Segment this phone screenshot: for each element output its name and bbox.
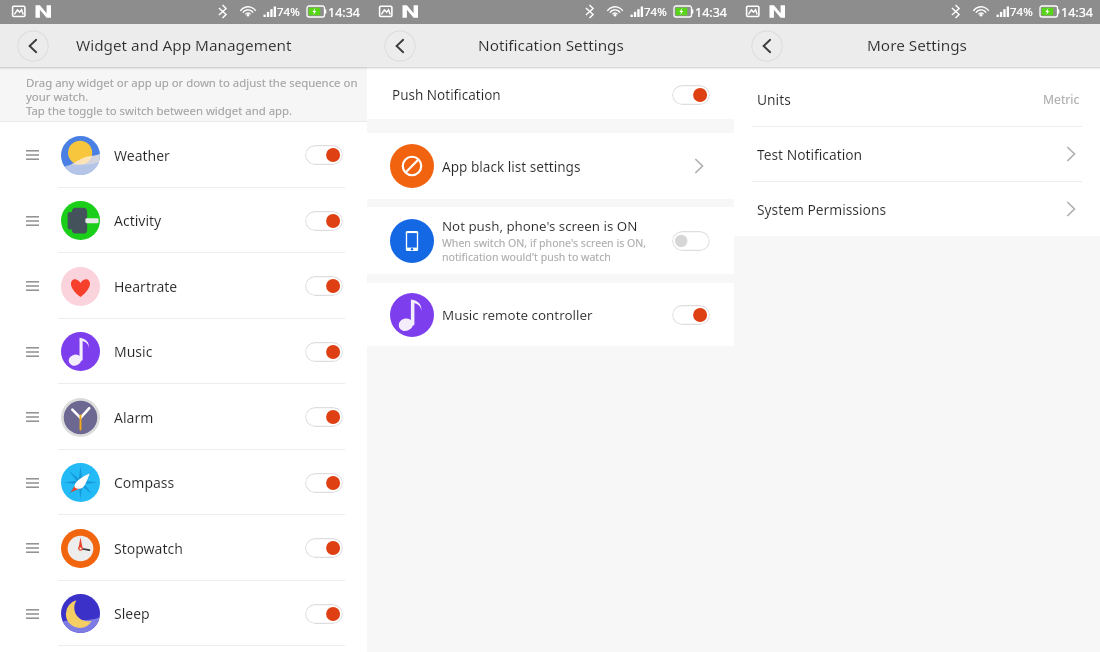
button[interactable]: System Permissions [734, 182, 1100, 236]
button[interactable]: Reorder Activity [0, 188, 367, 253]
button[interactable]: Push Notification [367, 70, 734, 119]
other: Reorder Sleep [26, 609, 39, 619]
button[interactable]: Reorder Heartrate [0, 253, 367, 319]
button[interactable]: Switch on [672, 305, 710, 325]
button[interactable]: Switch on [305, 604, 343, 624]
staticText: 74% [1010, 4, 1033, 20]
staticText: System Permissions [757, 200, 887, 219]
button[interactable]: Switch off [672, 231, 710, 251]
button[interactable]: Back [17, 30, 49, 62]
staticText: Music remote controller [442, 306, 593, 324]
button[interactable]: Switch on [305, 407, 343, 427]
staticText: 14:34 [1061, 4, 1093, 21]
staticText: Heartrate [114, 277, 178, 296]
button[interactable]: Switch on [305, 538, 343, 558]
button[interactable]: Reorder Sleep [0, 581, 367, 646]
staticText: When switch ON, if phone's screen is ON,… [442, 236, 647, 264]
button[interactable]: Switch on [305, 473, 343, 493]
button[interactable]: Switch on [305, 276, 343, 296]
staticText: Metric [1043, 91, 1080, 108]
staticText: 14:34 [695, 4, 727, 21]
staticText: Not push, phone's screen is ON [442, 217, 638, 235]
button[interactable]: Switch on [305, 342, 343, 362]
other: Reorder Stopwatch [26, 543, 39, 553]
button[interactable]: App black list settings [367, 133, 734, 199]
other: Reorder Activity [26, 216, 39, 226]
staticText: Sleep [114, 604, 150, 623]
staticText: 74% [644, 4, 667, 20]
staticText: Weather [114, 146, 170, 165]
staticText: App black list settings [442, 157, 581, 176]
button[interactable]: Reorder Music [0, 319, 367, 384]
other: Reorder Alarm [26, 412, 39, 422]
button[interactable]: Music remote controller [367, 283, 734, 346]
button[interactable]: Back [384, 30, 416, 62]
button[interactable]: Reorder Alarm [0, 384, 367, 450]
staticText: Notification Settings [478, 35, 624, 56]
other: Reorder Compass [26, 478, 39, 488]
staticText: Units [757, 90, 791, 109]
other: Reorder Heartrate [26, 281, 39, 291]
button[interactable]: Not push, phone's screen is ON [367, 207, 734, 274]
staticText: Stopwatch [114, 539, 183, 558]
staticText: Test Notification [757, 145, 863, 164]
staticText: More Settings [867, 35, 967, 56]
staticText: 74% [277, 4, 300, 20]
button[interactable]: Reorder Compass [0, 450, 367, 515]
staticText: Widget and App Management [76, 35, 292, 56]
button[interactable]: Back [751, 30, 783, 62]
other: Reorder Weather [26, 150, 39, 160]
staticText: Activity [114, 211, 162, 230]
button[interactable]: Reorder Stopwatch [0, 515, 367, 581]
button[interactable]: Switch on [305, 211, 343, 231]
button[interactable]: Switch on [305, 145, 343, 165]
button[interactable]: Reorder Weather [0, 122, 367, 188]
staticText: Compass [114, 473, 175, 492]
staticText: Music [114, 342, 153, 361]
staticText: Alarm [114, 408, 154, 427]
staticText: Push Notification [392, 86, 501, 104]
staticText: 14:34 [328, 4, 360, 21]
staticText: Drag any widget or app up or down to adj… [26, 75, 358, 118]
button[interactable]: Test Notification [734, 127, 1100, 181]
button[interactable]: Units [734, 72, 1100, 126]
other: Reorder Music [26, 347, 39, 357]
button[interactable]: Switch on [672, 85, 710, 105]
